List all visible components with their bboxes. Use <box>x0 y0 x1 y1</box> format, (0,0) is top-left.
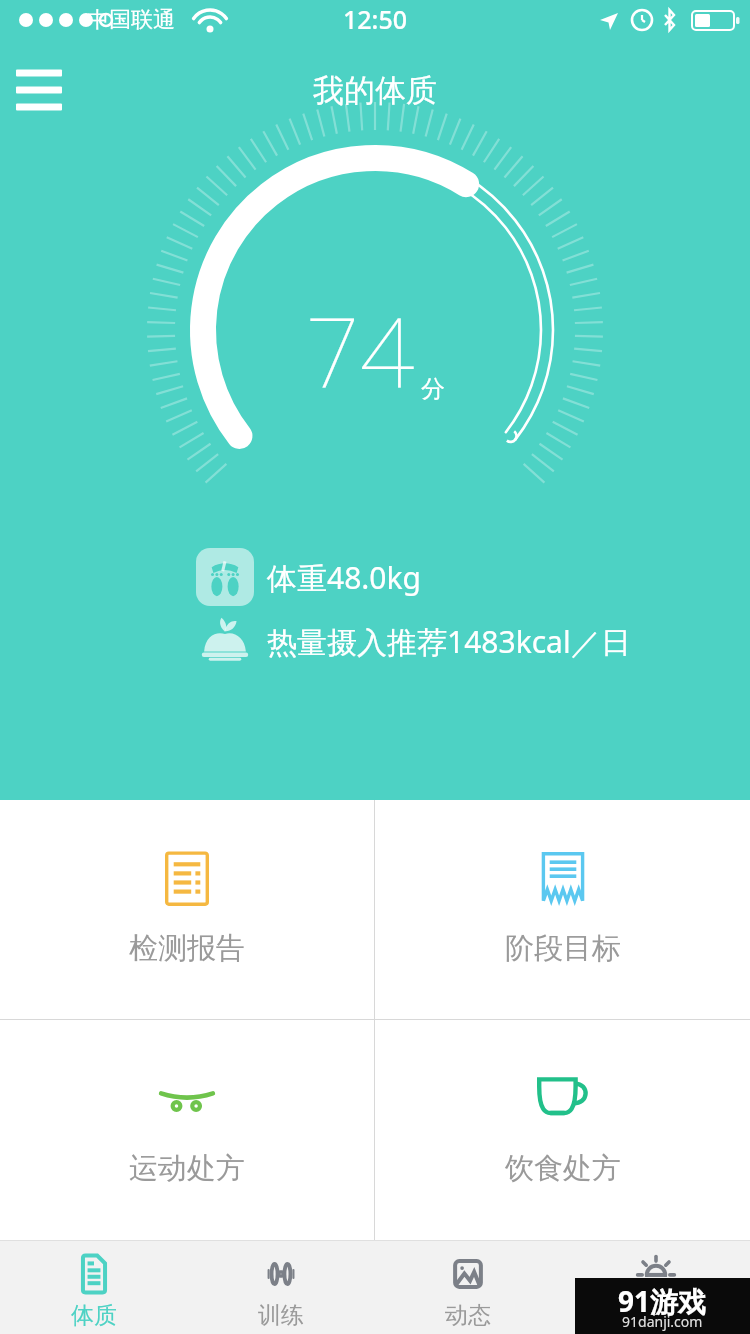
staticText: 训练 <box>258 1301 304 1330</box>
staticText: 检测报告 <box>129 930 245 967</box>
staticText: 中国联通 <box>87 6 175 34</box>
staticText: 91游戏 <box>618 1282 707 1320</box>
staticText: 发现 <box>633 1301 679 1330</box>
button[interactable]: 动态 <box>374 1240 562 1334</box>
staticText: 分 <box>421 374 445 404</box>
button[interactable]: 发现 <box>562 1240 750 1334</box>
button[interactable]: 训练 <box>187 1240 374 1334</box>
staticText: 动态 <box>445 1301 491 1330</box>
staticText: 91danji.com <box>622 1312 703 1331</box>
button[interactable]: 体质 <box>0 1240 187 1334</box>
button[interactable]: 饮食处方 <box>375 1020 750 1240</box>
staticText: 74 <box>305 285 415 416</box>
staticText: 饮食处方 <box>505 1150 621 1187</box>
staticText: 我的体质 <box>313 71 437 110</box>
staticText: 12:50 <box>343 2 408 36</box>
staticText: 热量摄入推荐1483kcal／日 <box>267 621 631 662</box>
button[interactable]: 运动处方 <box>0 1020 374 1240</box>
staticText: 运动处方 <box>129 1150 245 1187</box>
button[interactable]: Menu <box>10 61 68 119</box>
button[interactable]: 阶段目标 <box>375 800 750 1019</box>
button[interactable]: 检测报告 <box>0 800 374 1019</box>
staticText: 阶段目标 <box>505 930 621 967</box>
staticText: 体质 <box>71 1301 117 1330</box>
staticText: 体重48.0kg <box>267 557 421 598</box>
